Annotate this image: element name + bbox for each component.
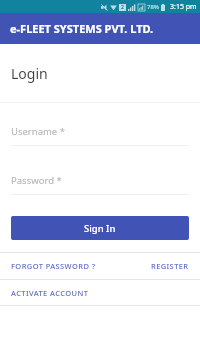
- staticText: FORGOT PASSWORD ?: [11, 261, 96, 271]
- button[interactable]: Sign In: [11, 216, 189, 240]
- button[interactable]: FORGOT PASSWORD ?: [11, 261, 96, 271]
- staticText: 2: [121, 4, 124, 11]
- button[interactable]: Password *: [11, 164, 189, 195]
- other: e-FLEET SYSTEMS PVT. LTD.: [0, 13, 200, 44]
- button[interactable]: ACTIVATE ACCOUNT: [11, 288, 89, 298]
- staticText: e-FLEET SYSTEMS PVT. LTD.: [10, 21, 154, 36]
- staticText: Password *: [11, 174, 62, 187]
- staticText: 78%: [147, 3, 159, 11]
- staticText: Sign In: [84, 222, 116, 235]
- staticText: REGISTER: [151, 261, 189, 271]
- button[interactable]: REGISTER: [151, 261, 189, 271]
- staticText: 3:15 pm: [170, 2, 197, 12]
- staticText: Username *: [11, 125, 65, 138]
- staticText: ACTIVATE ACCOUNT: [11, 288, 89, 298]
- button[interactable]: Username *: [11, 115, 189, 146]
- staticText: Login: [11, 64, 48, 83]
